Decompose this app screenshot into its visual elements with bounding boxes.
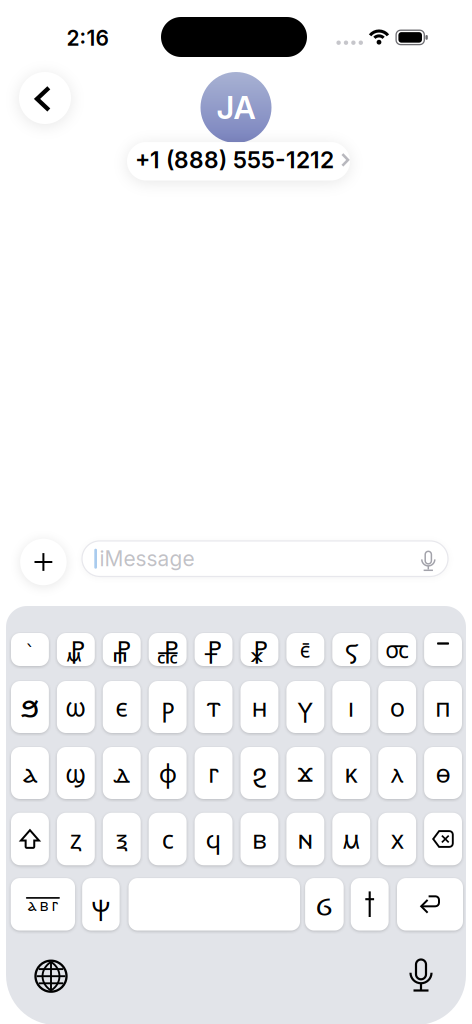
staticText: ⲣ: [161, 690, 174, 724]
button[interactable]: Conversation details: [127, 142, 350, 181]
staticText: iMessage: [100, 546, 195, 571]
staticText: ⲙ: [342, 822, 361, 856]
staticText: ⲡ: [435, 690, 451, 724]
staticText: ⲓ: [348, 690, 355, 724]
button[interactable]: Dictate: [421, 550, 436, 571]
button[interactable]: ⲍ: [57, 813, 95, 865]
button[interactable]: iMessage text field: [82, 541, 448, 576]
staticText: ⲁ: [27, 895, 36, 916]
button[interactable]: ϣ: [57, 747, 95, 799]
staticText: ⲋ: [345, 631, 358, 668]
button[interactable]: ⲃ: [240, 813, 278, 865]
button[interactable]: ⲩ: [286, 681, 324, 733]
staticText: ⲃ: [252, 822, 267, 856]
button[interactable]: ⲟ: [378, 681, 416, 733]
button[interactable]: `: [11, 633, 49, 666]
button[interactable]: Return: [397, 878, 463, 930]
button[interactable]: ϥ: [195, 813, 232, 865]
button[interactable]: ⲡ: [424, 681, 462, 733]
staticText: +1 (888) 555-1212: [135, 146, 334, 174]
staticText: ⲁ: [22, 756, 37, 790]
staticText: JA: [216, 88, 255, 126]
staticText: ⲃ: [39, 895, 48, 916]
button[interactable]: ⲛ: [286, 813, 324, 865]
button[interactable]: Back: [19, 72, 71, 124]
staticText: ϩ: [252, 753, 267, 792]
staticText: ⲝ: [116, 822, 128, 856]
staticText: ⲉ: [115, 690, 128, 724]
button[interactable]: †: [351, 878, 389, 930]
staticText: ⲥ: [162, 822, 174, 856]
button[interactable]: Dictate: [408, 958, 433, 991]
button[interactable]: ⳥: [57, 633, 95, 666]
staticText: ⲍ: [70, 822, 82, 856]
button[interactable]: ⲙ: [332, 813, 370, 865]
staticText: 2:16: [66, 25, 108, 51]
button[interactable]: ⲅ: [195, 747, 232, 799]
button[interactable]: macron: [424, 633, 462, 666]
staticText: ϧ: [20, 689, 39, 725]
button[interactable]: ⲁ: [11, 747, 49, 799]
staticText: ⲱ: [65, 690, 86, 724]
button[interactable]: ⲫ: [149, 747, 187, 799]
staticText: ⲫ: [159, 756, 177, 790]
staticText: ⳥: [66, 632, 85, 667]
staticText: ⲉ̄: [300, 635, 311, 664]
button[interactable]: ⲋ: [332, 633, 370, 666]
staticText: ⲛ: [297, 822, 313, 856]
staticText: ⳦: [113, 632, 131, 667]
staticText: ⲗ: [391, 756, 403, 790]
staticText: `: [25, 642, 34, 663]
staticText: Ⳓ: [318, 891, 331, 922]
staticText: ⲑ: [435, 756, 450, 790]
staticText: ϫ: [297, 758, 313, 788]
button[interactable]: ⲉ̄: [286, 633, 324, 666]
button[interactable]: ⳧: [149, 633, 187, 666]
button[interactable]: Add attachment: [20, 539, 67, 585]
staticText: ⲟ: [390, 690, 405, 724]
button[interactable]: Switch keyboard: [11, 878, 75, 930]
button[interactable]: Next keyboard: [35, 961, 66, 992]
button[interactable]: ⲥ: [149, 813, 187, 865]
staticText: ⲩ: [299, 690, 312, 724]
staticText: ⲭ: [391, 822, 404, 856]
button[interactable]: ⳩: [240, 633, 278, 666]
button[interactable]: ⲱ: [57, 681, 95, 733]
staticText: ⲅ: [208, 756, 219, 790]
button[interactable]: ϩ: [240, 747, 278, 799]
button[interactable]: ⳪: [378, 633, 416, 666]
button[interactable]: ⲝ: [103, 813, 141, 865]
staticText: ⲅ: [51, 895, 58, 916]
button[interactable]: ⲧ: [195, 681, 232, 733]
button[interactable]: ϧ: [11, 681, 49, 733]
staticText: ϣ: [65, 756, 86, 790]
button[interactable]: ⲇ: [103, 747, 141, 799]
button[interactable]: ⲭ: [378, 813, 416, 865]
staticText: ⲯ: [91, 886, 110, 922]
staticText: ⳪: [385, 634, 409, 665]
staticText: ⲧ: [206, 690, 220, 724]
staticText: ⳧: [157, 632, 179, 667]
button[interactable]: ⲏ: [240, 681, 278, 733]
button[interactable]: ⳓ: [305, 878, 344, 930]
staticText: ϥ: [205, 822, 221, 856]
button[interactable]: ⲕ: [332, 747, 370, 799]
button[interactable]: ⲉ: [103, 681, 141, 733]
button[interactable]: ⳦: [103, 633, 141, 666]
button[interactable]: ⳨: [195, 633, 232, 666]
button[interactable]: ⲓ: [332, 681, 370, 733]
button[interactable]: ⲣ: [149, 681, 187, 733]
button[interactable]: ⲯ: [82, 878, 120, 930]
button[interactable]: ⲑ: [424, 747, 462, 799]
staticText: ⲇ: [113, 756, 130, 790]
staticText: ⳨: [204, 632, 222, 667]
button[interactable]: Shift: [11, 813, 49, 865]
button[interactable]: ϫ: [286, 747, 324, 799]
button[interactable]: ⲗ: [378, 747, 416, 799]
button[interactable]: Contact JA: [200, 72, 271, 143]
staticText: ⲏ: [251, 690, 267, 724]
staticText: ⳩: [250, 632, 268, 667]
button[interactable]: Delete: [424, 813, 462, 865]
staticText: ⲕ: [344, 756, 358, 790]
